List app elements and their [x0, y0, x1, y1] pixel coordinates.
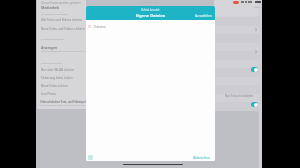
- staticText: SICHERUNGSOPTIONEN: [41, 12, 69, 15]
- staticText: Sicherung beim Laden: [41, 76, 73, 80]
- staticText: Unbeschränkter Foto- und Videospeicher: [40, 100, 91, 103]
- staticText: Abbrechen: [193, 155, 210, 159]
- staticText: Zuletzt benutzt: [141, 8, 160, 12]
- staticText: Anzeigen: [41, 45, 58, 50]
- staticText: Live Photo: [41, 92, 56, 96]
- staticText: Eigene Dateien: [136, 13, 166, 18]
- staticText: Nur Fotos hochladen: [225, 94, 254, 98]
- staticText: ANSICHTSOPTIONEN: [41, 37, 65, 40]
- staticText: Neue Fotos sichern: [41, 84, 69, 88]
- staticText: DATENVERBRAUCH: [41, 61, 63, 64]
- staticText: 100%: [254, 6, 260, 9]
- staticText: 9:41 Mi. 5. Juni: [140, 0, 158, 3]
- button[interactable]: Toggle: [251, 67, 258, 72]
- staticText: Alle Fotos und Videos sichern: [41, 18, 83, 22]
- staticText: Zeigt an, wieviele Fotos und Videos gesi…: [41, 50, 88, 53]
- staticText: Mediathek: [41, 5, 60, 10]
- button[interactable]: Toggle: [251, 102, 258, 107]
- staticText: Alle Sicherungen deiner Fotos in voller …: [40, 104, 89, 107]
- staticText: iCloud-Fotos werden geladen: [41, 1, 81, 5]
- staticText: Nur über WLAN sichern: [41, 68, 75, 72]
- staticText: Auswählen: [195, 13, 212, 17]
- staticText: Neue Fotos und Videos sichern: [41, 27, 85, 31]
- staticText: Dateien: [94, 24, 107, 28]
